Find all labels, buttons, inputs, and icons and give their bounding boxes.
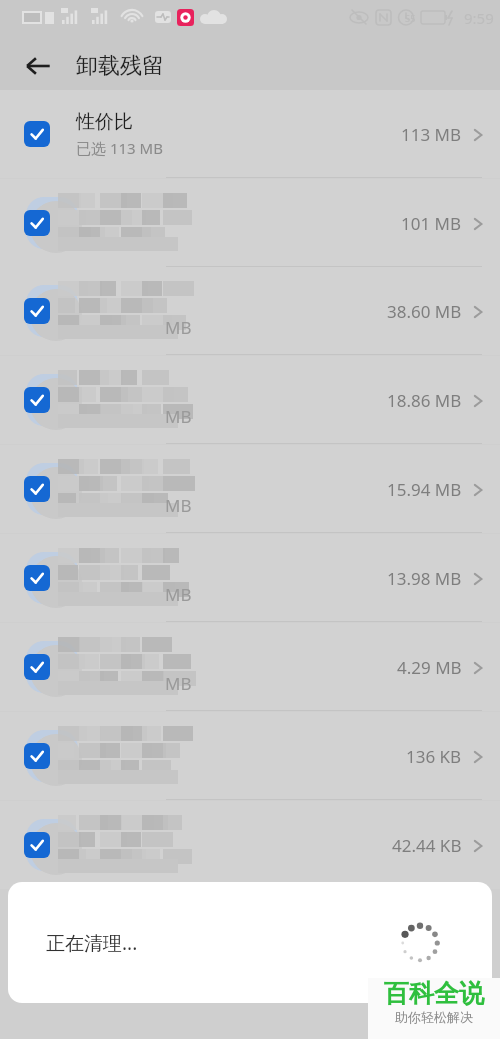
staticText: 助你轻松解决 — [395, 1009, 473, 1025]
button[interactable]: Selected — [24, 476, 50, 502]
staticText: 42.44 KB — [392, 834, 462, 857]
staticText: 18.86 MB — [387, 389, 462, 412]
button[interactable]: 正在清理... — [8, 882, 492, 1003]
button[interactable]: Selected — [24, 832, 50, 858]
button[interactable]: MB — [0, 356, 500, 444]
staticText: MB — [165, 405, 192, 428]
button[interactable]: MB — [0, 534, 500, 622]
staticText: 55 — [405, 12, 416, 24]
button[interactable]: Selected — [24, 387, 50, 413]
staticText: 4.29 MB — [397, 656, 462, 679]
button[interactable]: Selected — [0, 90, 500, 178]
staticText: 101 MB — [401, 212, 462, 235]
staticText: 正在清理... — [46, 930, 138, 956]
button[interactable]: Selected — [24, 654, 50, 680]
staticText: 136 KB — [406, 745, 462, 768]
staticText: 9:59 — [464, 8, 494, 28]
button[interactable]: MB — [0, 267, 500, 355]
staticText: MB — [165, 672, 192, 695]
staticText: 13.98 MB — [387, 567, 462, 590]
button[interactable]: Selected — [24, 210, 50, 236]
button[interactable]: Selected — [24, 121, 50, 147]
staticText: 113 MB — [401, 123, 462, 146]
button[interactable]: MB — [0, 623, 500, 711]
button[interactable]: Selected — [0, 712, 500, 800]
staticText: 百科全说 — [384, 978, 484, 1009]
button[interactable]: Selected — [0, 179, 500, 267]
staticText: 卸载残留 — [76, 52, 164, 80]
staticText: 性价比 — [76, 110, 133, 134]
staticText: 15.94 MB — [387, 478, 462, 501]
button[interactable]: Selected — [24, 565, 50, 591]
button[interactable]: Back — [14, 42, 62, 90]
staticText: MB — [165, 316, 192, 339]
staticText: 已选 113 MB — [76, 138, 163, 158]
button[interactable]: Selected — [24, 743, 50, 769]
staticText: MB — [165, 494, 192, 517]
button[interactable]: Selected — [24, 298, 50, 324]
staticText: 38.60 MB — [387, 300, 462, 323]
staticText: MB — [165, 583, 192, 606]
button[interactable]: MB — [0, 445, 500, 533]
button[interactable]: Selected — [0, 801, 500, 889]
